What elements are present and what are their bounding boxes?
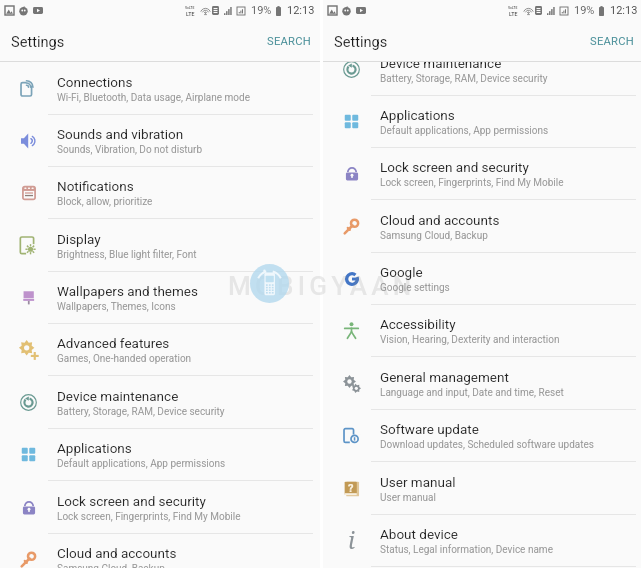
staticText: Settings (11, 33, 65, 50)
staticText: i (348, 524, 355, 555)
staticText: SEARCH (590, 35, 634, 48)
staticText: User manual (380, 492, 436, 504)
staticText: Default applications, App permissions (57, 458, 226, 470)
button[interactable]: Device maintenance (323, 44, 641, 96)
staticText: Software update (380, 421, 479, 437)
staticText: Games, One-handed operation (57, 353, 192, 365)
staticText: User manual (380, 474, 456, 490)
staticText: Battery, Storage, RAM, Device security (57, 406, 225, 418)
button[interactable]: Software update (323, 410, 641, 462)
button[interactable]: Wallpapers and themes (0, 272, 320, 324)
button[interactable]: Lock screen and security (0, 482, 320, 534)
button[interactable]: Device maintenance (0, 377, 320, 429)
button[interactable]: SEARCH (258, 27, 320, 56)
staticText: Default applications, App permissions (380, 125, 549, 137)
staticText: Google settings (380, 282, 450, 294)
staticText: Cloud and accounts (57, 545, 177, 561)
staticText: Lock screen and security (380, 159, 529, 175)
staticText: LTE (186, 11, 195, 16)
staticText: Notifications (57, 178, 134, 194)
button[interactable]: Sounds and vibration (0, 115, 320, 167)
staticText: Download updates, Scheduled software upd… (380, 439, 594, 451)
staticText: Connections (57, 74, 133, 90)
button[interactable]: Cloud and accounts (0, 534, 320, 568)
staticText: 12:13 (610, 4, 638, 17)
staticText: Vision, Hearing, Dexterity and interacti… (380, 334, 560, 346)
staticText: Wallpapers and themes (57, 283, 198, 299)
staticText: Sounds and vibration (57, 126, 184, 142)
staticText: Language and input, Date and time, Reset (380, 387, 564, 399)
staticText: VoLTE (508, 6, 518, 10)
staticText: Applications (57, 440, 132, 456)
button[interactable]: i (323, 515, 641, 567)
staticText: Status, Legal information, Device name (380, 544, 553, 556)
staticText: About device (380, 526, 459, 542)
button[interactable]: SEARCH (581, 27, 641, 56)
staticText: Cloud and accounts (380, 212, 500, 228)
staticText: Samsung Cloud, Backup (57, 563, 165, 568)
staticText: Sounds, Vibration, Do not disturb (57, 144, 203, 156)
staticText: Device maintenance (380, 55, 502, 71)
button[interactable]: Notifications (0, 167, 320, 219)
staticText: ? (348, 482, 354, 495)
staticText: Google (380, 264, 423, 280)
staticText: Lock screen, Fingerprints, Find My Mobil… (57, 511, 241, 523)
button[interactable]: Google (323, 253, 641, 305)
staticText: LTE (509, 11, 518, 16)
staticText: 12:13 (287, 4, 315, 17)
staticText: Accessibility (380, 316, 456, 332)
button[interactable]: Cloud and accounts (323, 201, 641, 253)
staticText: SEARCH (267, 35, 311, 48)
button[interactable]: ? (323, 463, 641, 515)
staticText: Settings (334, 33, 388, 50)
button[interactable]: Accessibility (323, 305, 641, 357)
staticText: MOBIGYAAN (228, 271, 416, 301)
staticText: 19% (574, 4, 595, 17)
button[interactable]: Advanced features (0, 324, 320, 376)
staticText: Display (57, 231, 101, 247)
staticText: Lock screen and security (57, 493, 206, 509)
staticText: Advanced features (57, 335, 170, 351)
staticText: General management (380, 369, 509, 385)
staticText: Wallpapers, Themes, Icons (57, 301, 176, 313)
staticText: Battery, Storage, RAM, Device security (380, 73, 548, 85)
button[interactable]: Connections (0, 63, 320, 115)
button[interactable]: General management (323, 358, 641, 410)
button[interactable]: Lock screen and security (323, 148, 641, 200)
button[interactable]: Applications (323, 96, 641, 148)
staticText: VoLTE (185, 6, 195, 10)
button[interactable]: Applications (0, 429, 320, 481)
staticText: Applications (380, 107, 455, 123)
staticText: 19% (251, 4, 272, 17)
staticText: Samsung Cloud, Backup (380, 230, 488, 242)
staticText: Brightness, Blue light filter, Font (57, 249, 197, 261)
staticText: Wi-Fi, Bluetooth, Data usage, Airplane m… (57, 92, 250, 104)
staticText: Lock screen, Fingerprints, Find My Mobil… (380, 177, 564, 189)
staticText: Block, allow, prioritize (57, 196, 153, 208)
button[interactable]: Display (0, 220, 320, 272)
staticText: Device maintenance (57, 388, 179, 404)
